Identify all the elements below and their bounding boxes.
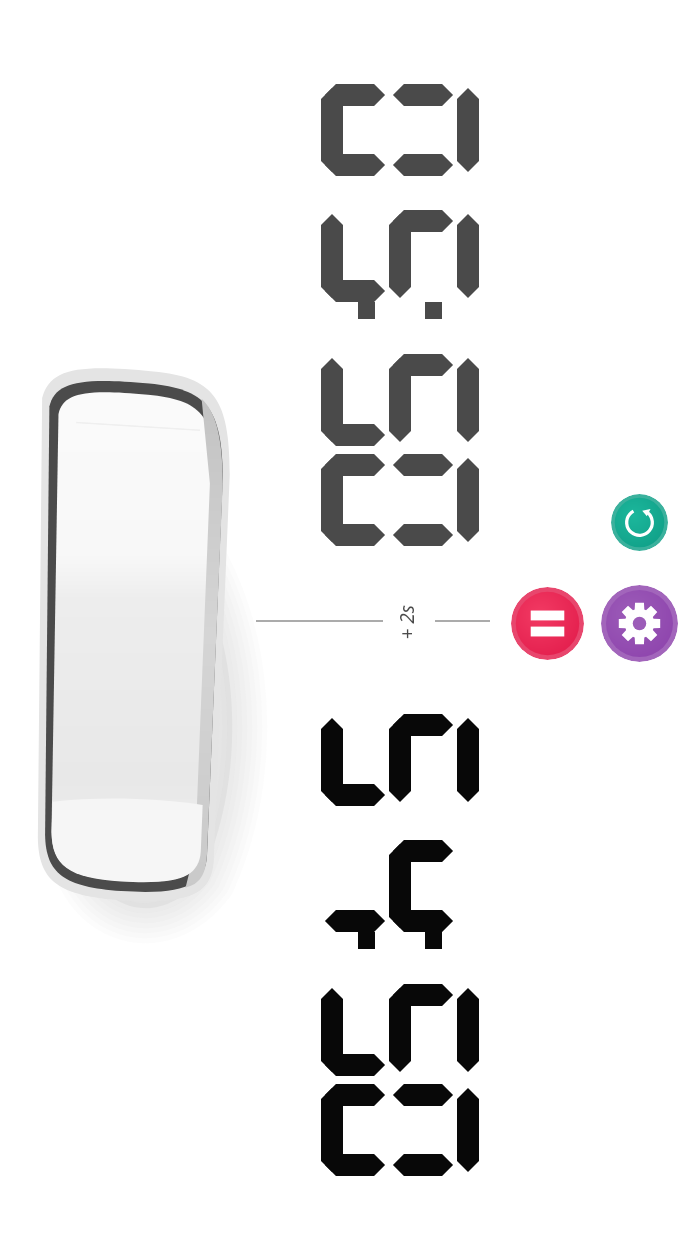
button[interactable]: Pause xyxy=(511,587,584,660)
button[interactable]: Settings xyxy=(601,585,678,662)
staticText: + 2s xyxy=(393,604,419,639)
button[interactable]: Device preview xyxy=(14,350,282,916)
button[interactable]: Reset xyxy=(611,494,668,551)
